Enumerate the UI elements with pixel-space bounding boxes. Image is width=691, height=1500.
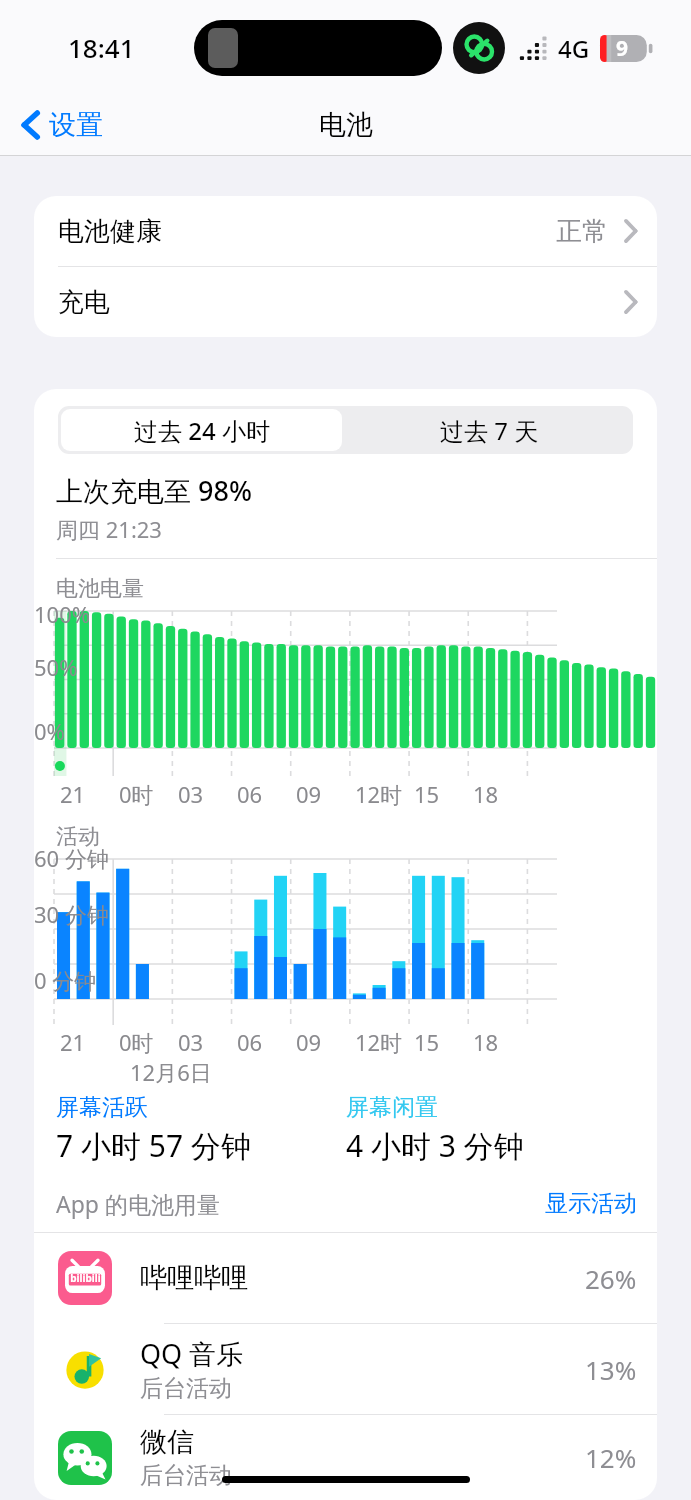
- staticText: 过去 24 小时: [134, 414, 270, 447]
- staticText: 12时: [355, 1027, 403, 1057]
- staticText: App 的电池用量: [56, 1188, 220, 1219]
- staticText: 100%: [34, 599, 91, 629]
- staticText: 15: [414, 1027, 440, 1057]
- staticText: 哔哩哔哩: [140, 1261, 248, 1295]
- staticText: 50%: [34, 652, 78, 682]
- staticText: 30 分钟: [34, 899, 109, 929]
- staticText: 18: [473, 779, 499, 809]
- staticText: 过去 7 天: [440, 414, 539, 447]
- staticText: 屏幕活跃: [56, 1093, 148, 1122]
- button[interactable]: bilibili: [34, 1233, 657, 1323]
- staticText: 活动: [56, 823, 100, 851]
- staticText: 9: [616, 34, 629, 63]
- staticText: 12月6日: [130, 1057, 212, 1087]
- staticText: 18: [473, 1027, 499, 1057]
- staticText: 屏幕闲置: [346, 1093, 438, 1122]
- staticText: 4 小时 3 分钟: [346, 1125, 524, 1166]
- staticText: 0时: [119, 1027, 154, 1057]
- staticText: 上次充电至 98%: [56, 472, 252, 509]
- staticText: 显示活动: [545, 1189, 637, 1218]
- staticText: 06: [237, 1027, 263, 1057]
- staticText: 21: [60, 1027, 86, 1057]
- staticText: 26%: [585, 1261, 637, 1296]
- staticText: 设置: [49, 108, 103, 142]
- staticText: 09: [296, 1027, 322, 1057]
- button[interactable]: 电池健康: [34, 196, 657, 266]
- staticText: 60 分钟: [34, 843, 109, 873]
- button[interactable]: 微信: [34, 1415, 657, 1500]
- staticText: 4G: [558, 32, 590, 65]
- button[interactable]: 设置: [16, 102, 109, 148]
- staticText: 正常: [556, 215, 608, 248]
- staticText: 0 分钟: [34, 965, 97, 995]
- staticText: 0%: [34, 716, 65, 746]
- staticText: 12时: [355, 779, 403, 809]
- staticText: 0时: [119, 779, 154, 809]
- staticText: 06: [237, 779, 263, 809]
- staticText: 03: [178, 1027, 204, 1057]
- button[interactable]: 充电: [34, 267, 657, 337]
- staticText: 7 小时 57 分钟: [56, 1125, 251, 1166]
- button[interactable]: 过去 7 天: [345, 406, 633, 454]
- staticText: 03: [178, 779, 204, 809]
- staticText: 后台活动: [140, 1461, 232, 1490]
- staticText: 周四 21:23: [56, 514, 162, 544]
- staticText: 电池电量: [56, 575, 144, 603]
- staticText: 21: [60, 779, 86, 809]
- staticText: 电池: [319, 108, 373, 142]
- staticText: 18:41: [68, 30, 135, 65]
- staticText: QQ 音乐: [140, 1335, 244, 1372]
- staticText: 15: [414, 779, 440, 809]
- staticText: 13%: [585, 1352, 637, 1387]
- staticText: 09: [296, 779, 322, 809]
- staticText: bilibili: [70, 1271, 101, 1285]
- button[interactable]: 显示活动: [545, 1189, 637, 1218]
- staticText: 电池健康: [58, 215, 162, 248]
- button[interactable]: QQ 音乐: [34, 1324, 657, 1414]
- staticText: 后台活动: [140, 1374, 232, 1403]
- button[interactable]: 过去 24 小时: [61, 409, 342, 451]
- staticText: 微信: [140, 1425, 194, 1459]
- staticText: 充电: [58, 286, 110, 319]
- staticText: 12%: [585, 1440, 637, 1475]
